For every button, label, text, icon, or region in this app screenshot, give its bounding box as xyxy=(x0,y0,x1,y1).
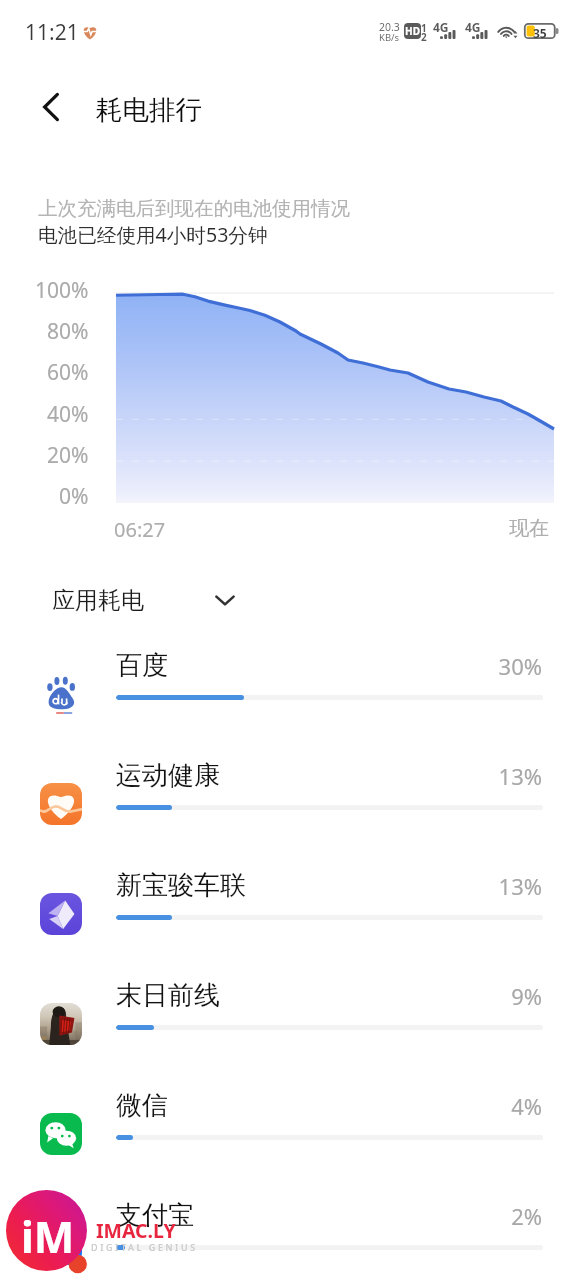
staticText: 60% xyxy=(47,358,89,387)
staticText: 80% xyxy=(47,317,89,346)
staticText: 13% xyxy=(0,761,542,791)
staticText: 06:27 xyxy=(114,516,166,543)
staticText: IMAC.LY xyxy=(96,1217,176,1244)
staticText: 新宝骏车联 xyxy=(116,869,246,902)
staticText: 20.3 xyxy=(379,20,400,34)
staticText: 上次充满电后到现在的电池使用情况 xyxy=(38,196,350,221)
button[interactable]: Expand xyxy=(205,580,245,620)
staticText: 耗电排行 xyxy=(96,93,202,126)
staticText: 百度 xyxy=(116,649,168,682)
button[interactable]: 百度 xyxy=(0,643,580,753)
other: WiFi xyxy=(497,23,519,39)
staticText: 4G xyxy=(433,19,449,35)
staticText: iM xyxy=(21,1207,75,1266)
staticText: KB/s xyxy=(379,31,400,44)
staticText: 电池已经使用4小时53分钟 xyxy=(38,221,268,248)
staticText: 35 xyxy=(533,25,547,41)
staticText: 4% xyxy=(0,1091,542,1121)
staticText: 末日前线 xyxy=(116,979,220,1012)
staticText: 11:21 xyxy=(25,18,79,47)
button[interactable]: 应用耗电 xyxy=(38,586,158,615)
staticText: 4G xyxy=(465,19,481,35)
staticText: 20% xyxy=(47,441,89,470)
staticText: 2 xyxy=(421,30,427,44)
button[interactable]: 支付宝 xyxy=(0,1193,580,1276)
staticText: 30% xyxy=(0,651,542,681)
staticText: 应用耗电 xyxy=(52,586,144,615)
button[interactable]: 微信 xyxy=(0,1083,580,1193)
staticText: 微信 xyxy=(116,1089,168,1122)
staticText: 现在 xyxy=(509,516,549,541)
staticText: 9% xyxy=(0,981,542,1011)
staticText: 1 xyxy=(421,21,427,35)
staticText: 0% xyxy=(59,482,89,511)
staticText: 100% xyxy=(35,276,89,305)
staticText: 2% xyxy=(0,1201,542,1231)
staticText: 支付宝 xyxy=(116,1199,194,1232)
staticText: 13% xyxy=(0,871,542,901)
button[interactable]: 运动健康 xyxy=(0,753,580,863)
staticText: HD xyxy=(405,24,420,38)
staticText: DIGITAL GENIUS xyxy=(91,1241,198,1253)
staticText: 40% xyxy=(47,400,89,429)
staticText: 运动健康 xyxy=(116,759,220,792)
button[interactable]: 末日前线 xyxy=(0,973,580,1083)
button[interactable]: 新宝骏车联 xyxy=(0,863,580,973)
button[interactable]: Back xyxy=(22,80,80,138)
